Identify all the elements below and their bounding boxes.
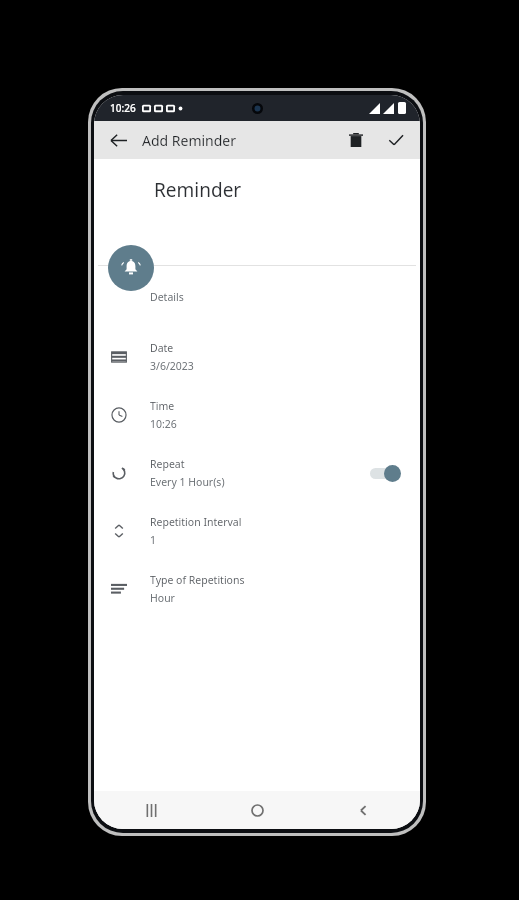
staticText: Reminder bbox=[154, 177, 242, 203]
staticText: Repetition Interval bbox=[150, 515, 242, 529]
button[interactable]: Delete bbox=[340, 124, 372, 156]
staticText: 10:26 bbox=[110, 101, 136, 115]
button[interactable]: Home bbox=[240, 793, 274, 827]
button[interactable]: Back bbox=[100, 122, 136, 158]
staticText: Details bbox=[150, 290, 184, 304]
button[interactable]: Reminder alarm bbox=[108, 245, 154, 291]
staticText: 3/6/2023 bbox=[150, 359, 194, 373]
button[interactable]: Time bbox=[94, 386, 420, 444]
staticText: Type of Repetitions bbox=[150, 573, 245, 587]
staticText: Hour bbox=[150, 591, 175, 605]
staticText: Date bbox=[150, 341, 174, 355]
staticText: Repeat bbox=[150, 457, 185, 471]
staticText: Add Reminder bbox=[142, 131, 237, 150]
staticText: Time bbox=[150, 399, 175, 413]
staticText: 1 bbox=[150, 533, 157, 547]
button[interactable]: Back bbox=[346, 793, 380, 827]
button[interactable]: Repeat bbox=[94, 444, 420, 502]
button[interactable]: Recent apps bbox=[134, 793, 168, 827]
button[interactable]: Save bbox=[380, 124, 412, 156]
button[interactable]: Repetition Interval bbox=[94, 502, 420, 560]
staticText: Every 1 Hour(s) bbox=[150, 475, 225, 489]
staticText: 10:26 bbox=[150, 417, 177, 431]
button[interactable]: Type of Repetitions bbox=[94, 560, 420, 618]
button[interactable]: Repeat toggle bbox=[368, 461, 406, 485]
button[interactable]: Date bbox=[94, 328, 420, 386]
